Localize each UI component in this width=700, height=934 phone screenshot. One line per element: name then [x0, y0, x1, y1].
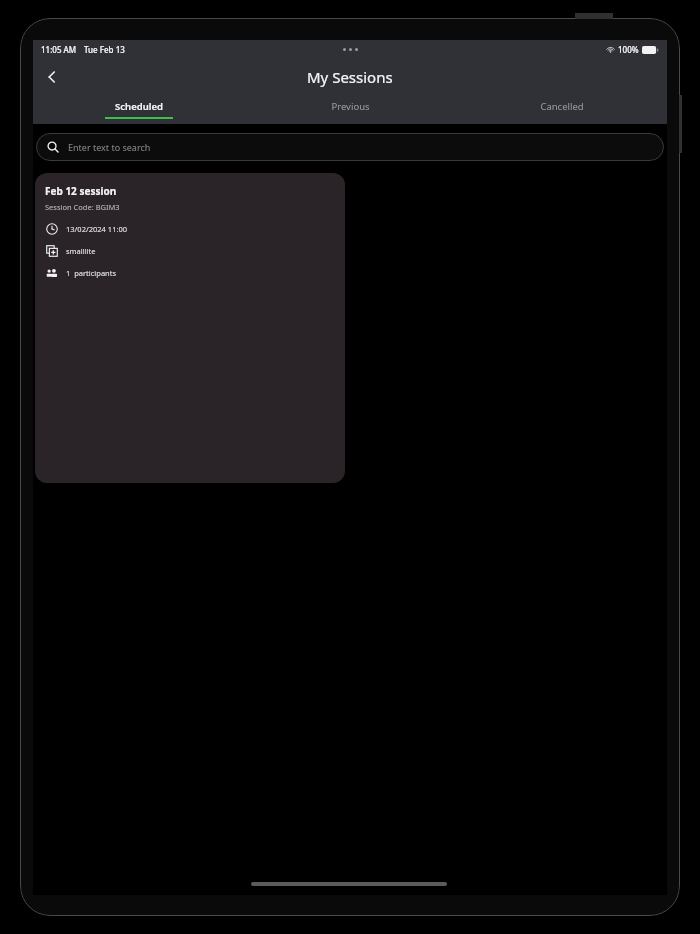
staticText: Session Code: BGIM3	[45, 202, 120, 212]
staticText: Enter text to search	[68, 141, 151, 153]
button[interactable]: Feb 12 session	[35, 173, 345, 483]
staticText: Tue Feb 13	[84, 44, 125, 55]
button[interactable]: Back	[37, 62, 67, 92]
button[interactable]: Enter text to search	[36, 133, 664, 161]
staticText: smalllite	[66, 246, 96, 256]
staticText: 100%	[618, 44, 639, 55]
button[interactable]: Previous	[245, 95, 456, 124]
button[interactable]: Scheduled	[33, 95, 245, 124]
staticText: Cancelled	[540, 100, 584, 113]
staticText: Previous	[331, 100, 370, 113]
staticText: Feb 12 session	[45, 184, 117, 198]
staticText: 1 participants	[66, 268, 117, 278]
staticText: 13/02/2024 11:00	[66, 224, 128, 234]
button[interactable]: Cancelled	[456, 95, 667, 124]
staticText: Scheduled	[115, 100, 163, 113]
staticText: My Sessions	[307, 67, 393, 87]
staticText: 11:05 AM	[41, 44, 77, 55]
